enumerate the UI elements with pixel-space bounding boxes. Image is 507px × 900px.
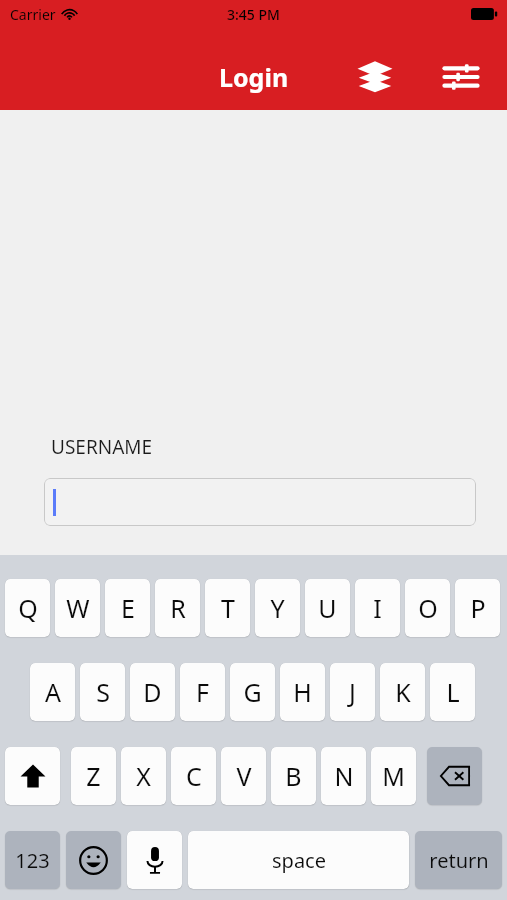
button[interactable]: O — [405, 579, 450, 637]
button[interactable]: Backspace — [427, 747, 482, 805]
staticText: M — [382, 759, 405, 793]
staticText: Login — [219, 60, 289, 94]
button[interactable]: S — [80, 663, 125, 721]
button[interactable]: G — [230, 663, 275, 721]
button[interactable]: Shift — [5, 747, 60, 805]
staticText: E — [121, 591, 135, 625]
button[interactable]: C — [171, 747, 216, 805]
staticText: space — [272, 847, 326, 874]
staticText: O — [418, 591, 438, 625]
button[interactable]: Y — [255, 579, 300, 637]
button[interactable]: V — [221, 747, 266, 805]
button[interactable]: M — [371, 747, 416, 805]
button[interactable]: H — [280, 663, 325, 721]
button[interactable]: R — [155, 579, 200, 637]
staticText: V — [236, 759, 252, 793]
staticText: I — [373, 591, 382, 625]
button[interactable]: F — [180, 663, 225, 721]
staticText: N — [334, 759, 354, 793]
button[interactable]: space — [188, 831, 409, 889]
staticText: L — [446, 675, 460, 709]
staticText: Z — [86, 759, 101, 793]
button[interactable]: 123 — [5, 831, 60, 889]
staticText: H — [293, 675, 312, 709]
button[interactable]: U — [305, 579, 350, 637]
button[interactable]: return — [415, 831, 502, 889]
staticText: A — [45, 675, 61, 709]
staticText: K — [395, 675, 411, 709]
button[interactable]: I — [355, 579, 400, 637]
staticText: D — [143, 675, 162, 709]
staticText: C — [186, 759, 202, 793]
staticText: U — [318, 591, 337, 625]
staticText: J — [349, 675, 356, 709]
staticText: S — [96, 675, 110, 709]
button[interactable]: T — [205, 579, 250, 637]
button[interactable]: L — [430, 663, 475, 721]
staticText: W — [66, 591, 90, 625]
staticText: P — [470, 591, 486, 625]
button[interactable] — [44, 478, 476, 526]
button[interactable]: Q — [5, 579, 50, 637]
button[interactable]: X — [121, 747, 166, 805]
staticText: B — [285, 759, 302, 793]
button[interactable]: P — [455, 579, 500, 637]
button[interactable]: W — [55, 579, 100, 637]
staticText: return — [429, 847, 489, 874]
staticText: Q — [18, 591, 38, 625]
staticText: X — [136, 759, 151, 793]
button[interactable]: K — [380, 663, 425, 721]
staticText: T — [221, 591, 235, 625]
button[interactable]: Z — [71, 747, 116, 805]
staticText: USERNAME — [51, 434, 153, 460]
staticText: Carrier — [10, 5, 56, 24]
button[interactable]: B — [271, 747, 316, 805]
button[interactable]: D — [130, 663, 175, 721]
button[interactable]: Settings — [437, 53, 485, 101]
staticText: Y — [270, 591, 285, 625]
staticText: R — [170, 591, 186, 625]
button[interactable]: A — [30, 663, 75, 721]
staticText: G — [243, 675, 262, 709]
button[interactable]: E — [105, 579, 150, 637]
button[interactable]: Layers — [351, 53, 399, 101]
staticText: 123 — [15, 847, 50, 874]
staticText: F — [196, 675, 209, 709]
staticText: 3:45 PM — [227, 5, 280, 24]
button[interactable]: J — [330, 663, 375, 721]
button[interactable]: N — [321, 747, 366, 805]
button[interactable]: Emoji — [66, 831, 121, 889]
button[interactable]: Dictate — [127, 831, 182, 889]
